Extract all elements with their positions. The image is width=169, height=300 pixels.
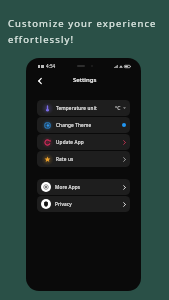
staticText: Change Theme — [56, 122, 92, 128]
button[interactable]: Privacy — [37, 196, 130, 212]
button[interactable]: Back — [35, 76, 45, 86]
staticText: Rate us — [56, 156, 74, 162]
staticText: Customize your experience effortlessly! — [8, 17, 157, 46]
staticText: Privacy — [55, 201, 72, 207]
button[interactable]: Rate us — [37, 151, 130, 167]
staticText: Update App — [56, 139, 84, 145]
button[interactable]: Temperature unit — [37, 100, 130, 116]
staticText: More Apps — [55, 184, 81, 190]
button[interactable]: Update App — [37, 134, 130, 150]
staticText: °C — [115, 105, 121, 112]
button[interactable]: More Apps — [37, 179, 130, 195]
staticText: Temperature unit — [56, 105, 97, 111]
button[interactable]: Change Theme — [37, 117, 130, 133]
staticText: 4:54 — [46, 63, 56, 69]
staticText: Settings — [73, 76, 97, 84]
